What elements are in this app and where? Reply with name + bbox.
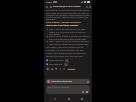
button[interactable]: buildsystem.tech	[46, 58, 90, 62]
staticText: Step 2: Find a trusted archive mirror th…	[49, 35, 90, 40]
staticText: Download Java Final Fantasy	[53, 5, 81, 8]
button[interactable]: Thank me one question	[46, 85, 90, 94]
button[interactable]: Refresh	[62, 67, 66, 71]
button[interactable]: Like	[50, 67, 54, 71]
staticText: 10:24	[46, 1, 52, 4]
staticText: +3	[65, 64, 67, 66]
button[interactable]: Back	[45, 5, 49, 9]
button[interactable]: Back	[52, 96, 57, 101]
staticText: Step 3: Open the JAR file inside the emu…	[49, 40, 90, 45]
button[interactable]: Recents	[79, 96, 84, 101]
button[interactable]: New chat	[88, 5, 91, 8]
button[interactable]: Share	[58, 67, 62, 71]
button[interactable]: Copy	[46, 67, 50, 71]
button[interactable]: Voice	[85, 90, 88, 93]
staticText: Caution: Only download game archives fro…	[46, 52, 90, 57]
button[interactable]: Dismiss	[86, 80, 89, 83]
button[interactable]: j2meloader.org	[46, 62, 90, 66]
staticText: +3	[66, 60, 68, 62]
button[interactable]: Gemini	[67, 68, 76, 70]
button[interactable]: Home	[66, 96, 71, 101]
staticText: Here is how to get them running:	[46, 24, 78, 27]
staticText: Java versions of the classic Final Fanta…	[46, 9, 90, 20]
button[interactable]: History	[49, 5, 53, 9]
staticText: Gemini	[69, 68, 75, 70]
button[interactable]: Add a file or use an app	[46, 79, 90, 84]
button[interactable]: Search	[85, 5, 88, 8]
staticText: In summary, the setup is simple once the…	[46, 46, 90, 51]
staticText: j2meloader.org	[49, 63, 63, 66]
button[interactable]: Dislike	[54, 67, 58, 71]
staticText: buildsystem.tech	[49, 59, 64, 62]
staticText: Add a file or use an app	[51, 80, 72, 83]
staticText: Step 1: Install an emulator such as J2ME…	[49, 28, 90, 35]
staticText: Super Fantasy 4 Version Playstation	[46, 21, 81, 24]
button[interactable]: Attach	[81, 90, 84, 93]
staticText: Thank me one question	[48, 86, 69, 89]
